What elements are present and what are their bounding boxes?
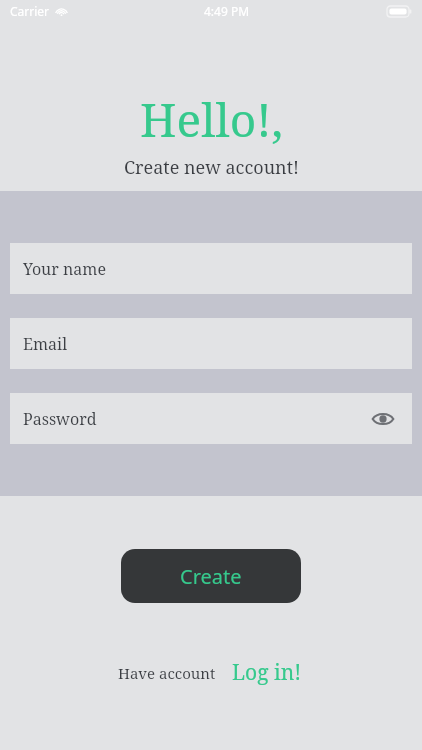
button[interactable]: Password <box>10 393 412 444</box>
staticText: 4:49 PM <box>204 3 250 19</box>
button[interactable]: Log in! <box>230 656 304 689</box>
button[interactable]: Email <box>10 318 412 369</box>
button[interactable]: Create <box>121 549 301 603</box>
staticText: Email <box>23 333 68 355</box>
staticText: Have account <box>118 663 216 683</box>
staticText: Password <box>23 408 97 430</box>
button[interactable]: Your name <box>10 243 412 294</box>
staticText: Create new account! <box>124 155 299 180</box>
staticText: Log in! <box>232 658 302 687</box>
button[interactable]: Show password <box>367 403 399 435</box>
staticText: Your name <box>23 258 106 280</box>
staticText: Hello!, <box>140 88 283 151</box>
staticText: Create <box>180 563 242 590</box>
staticText: Carrier <box>10 3 50 19</box>
